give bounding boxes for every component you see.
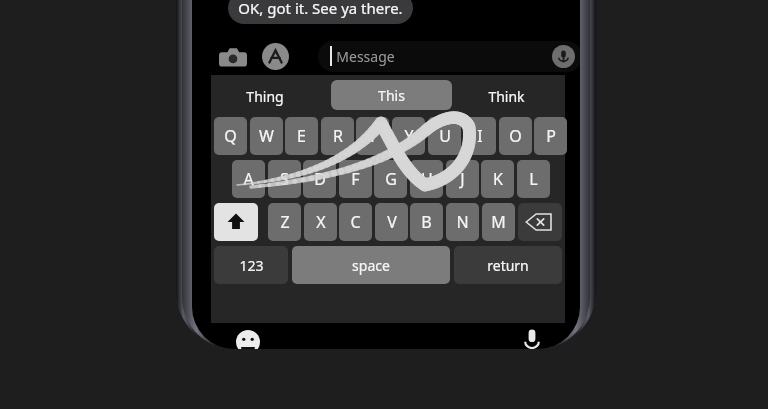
- staticText: U: [439, 125, 451, 147]
- staticText: G: [385, 168, 397, 190]
- staticText: Z: [280, 211, 290, 233]
- button[interactable]: S: [268, 160, 301, 198]
- button[interactable]: J: [446, 160, 479, 198]
- button[interactable]: Emoji: [236, 330, 260, 349]
- button[interactable]: U: [428, 117, 461, 155]
- button[interactable]: L: [517, 160, 550, 198]
- staticText: D: [314, 168, 326, 190]
- button[interactable]: Dictate: [552, 45, 575, 68]
- staticText: I: [477, 125, 483, 147]
- staticText: return: [487, 256, 529, 275]
- staticText: R: [333, 125, 343, 147]
- button[interactable]: space: [292, 246, 450, 284]
- button[interactable]: V: [375, 203, 408, 241]
- button[interactable]: R: [321, 117, 354, 155]
- button[interactable]: P: [534, 117, 567, 155]
- staticText: J: [460, 168, 465, 190]
- button[interactable]: Message: [318, 41, 580, 72]
- button[interactable]: OK, got it. See ya there.: [228, 0, 413, 24]
- staticText: W: [259, 125, 274, 147]
- button[interactable]: Q: [214, 117, 247, 155]
- button[interactable]: F: [339, 160, 372, 198]
- button[interactable]: C: [339, 203, 372, 241]
- staticText: X: [316, 211, 326, 233]
- staticText: Y: [404, 125, 414, 147]
- button[interactable]: O: [499, 117, 532, 155]
- button[interactable]: E: [285, 117, 318, 155]
- staticText: 123: [239, 256, 264, 275]
- button[interactable]: Z: [268, 203, 301, 241]
- staticText: A: [243, 168, 254, 190]
- button[interactable]: B: [410, 203, 443, 241]
- staticText: V: [387, 211, 397, 233]
- button[interactable]: H: [410, 160, 443, 198]
- button[interactable]: X: [304, 203, 337, 241]
- button[interactable]: 123: [214, 246, 288, 284]
- button[interactable]: K: [481, 160, 514, 198]
- button[interactable]: Camera: [219, 45, 247, 69]
- button[interactable]: App Store: [262, 43, 289, 70]
- staticText: L: [529, 168, 538, 190]
- staticText: space: [352, 256, 390, 275]
- button[interactable]: Y: [392, 117, 425, 155]
- button[interactable]: Thing: [246, 87, 284, 106]
- staticText: K: [493, 168, 503, 190]
- staticText: H: [421, 168, 433, 190]
- staticText: This: [378, 86, 405, 105]
- button[interactable]: Backspace: [518, 203, 562, 241]
- staticText: M: [491, 211, 506, 233]
- staticText: P: [546, 125, 556, 147]
- button[interactable]: T: [356, 117, 389, 155]
- button[interactable]: N: [446, 203, 479, 241]
- staticText: S: [280, 168, 289, 190]
- button[interactable]: This: [331, 80, 452, 110]
- staticText: F: [351, 168, 360, 190]
- button[interactable]: G: [374, 160, 407, 198]
- button[interactable]: D: [303, 160, 336, 198]
- staticText: Q: [224, 125, 237, 147]
- staticText: N: [456, 211, 469, 233]
- button[interactable]: W: [250, 117, 283, 155]
- button[interactable]: return: [454, 246, 562, 284]
- button[interactable]: Shift: [214, 203, 258, 241]
- staticText: Message: [336, 47, 395, 66]
- button[interactable]: A: [232, 160, 265, 198]
- button[interactable]: I: [463, 117, 496, 155]
- staticText: OK, got it. See ya there.: [238, 0, 403, 18]
- staticText: C: [350, 211, 361, 233]
- staticText: T: [368, 125, 377, 147]
- button[interactable]: M: [482, 203, 515, 241]
- staticText: E: [297, 125, 306, 147]
- staticText: O: [509, 125, 522, 147]
- staticText: B: [421, 211, 432, 233]
- button[interactable]: Think: [488, 87, 525, 106]
- button[interactable]: Dictation: [522, 328, 542, 349]
